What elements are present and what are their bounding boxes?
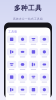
button[interactable]: Tool 7 [29, 48, 38, 57]
button[interactable]: Tool 6 [18, 48, 27, 57]
button[interactable]: Tool 17 [7, 86, 16, 95]
staticText: 工具箱 [8, 30, 17, 33]
button[interactable]: Tool 13 [7, 73, 16, 83]
button[interactable]: Tool 14 [18, 73, 27, 83]
button[interactable]: Tool 2 [18, 36, 27, 45]
button[interactable]: Tool 1 [7, 36, 16, 45]
button[interactable]: Tool 15 [29, 73, 38, 83]
staticText: 多种工具 [14, 4, 42, 12]
button[interactable]: Tool 8 [40, 48, 49, 57]
button[interactable]: Tool 10 [18, 61, 27, 70]
button[interactable]: Tool 20 [40, 86, 49, 95]
button[interactable]: Tool 11 [29, 61, 38, 70]
button[interactable]: Tool 4 [40, 36, 49, 45]
button[interactable]: Tool 19 [29, 86, 38, 95]
button[interactable]: Tool 9 [7, 61, 16, 70]
button[interactable]: Tool 16 [40, 73, 49, 83]
button[interactable]: Tool 12 [40, 61, 49, 70]
button[interactable]: Tool 3 [29, 36, 38, 45]
button[interactable]: Tool 18 [18, 86, 27, 95]
staticText: 高效办公一站式工具箱 [13, 17, 43, 20]
button[interactable]: Tool 5 [7, 48, 16, 57]
